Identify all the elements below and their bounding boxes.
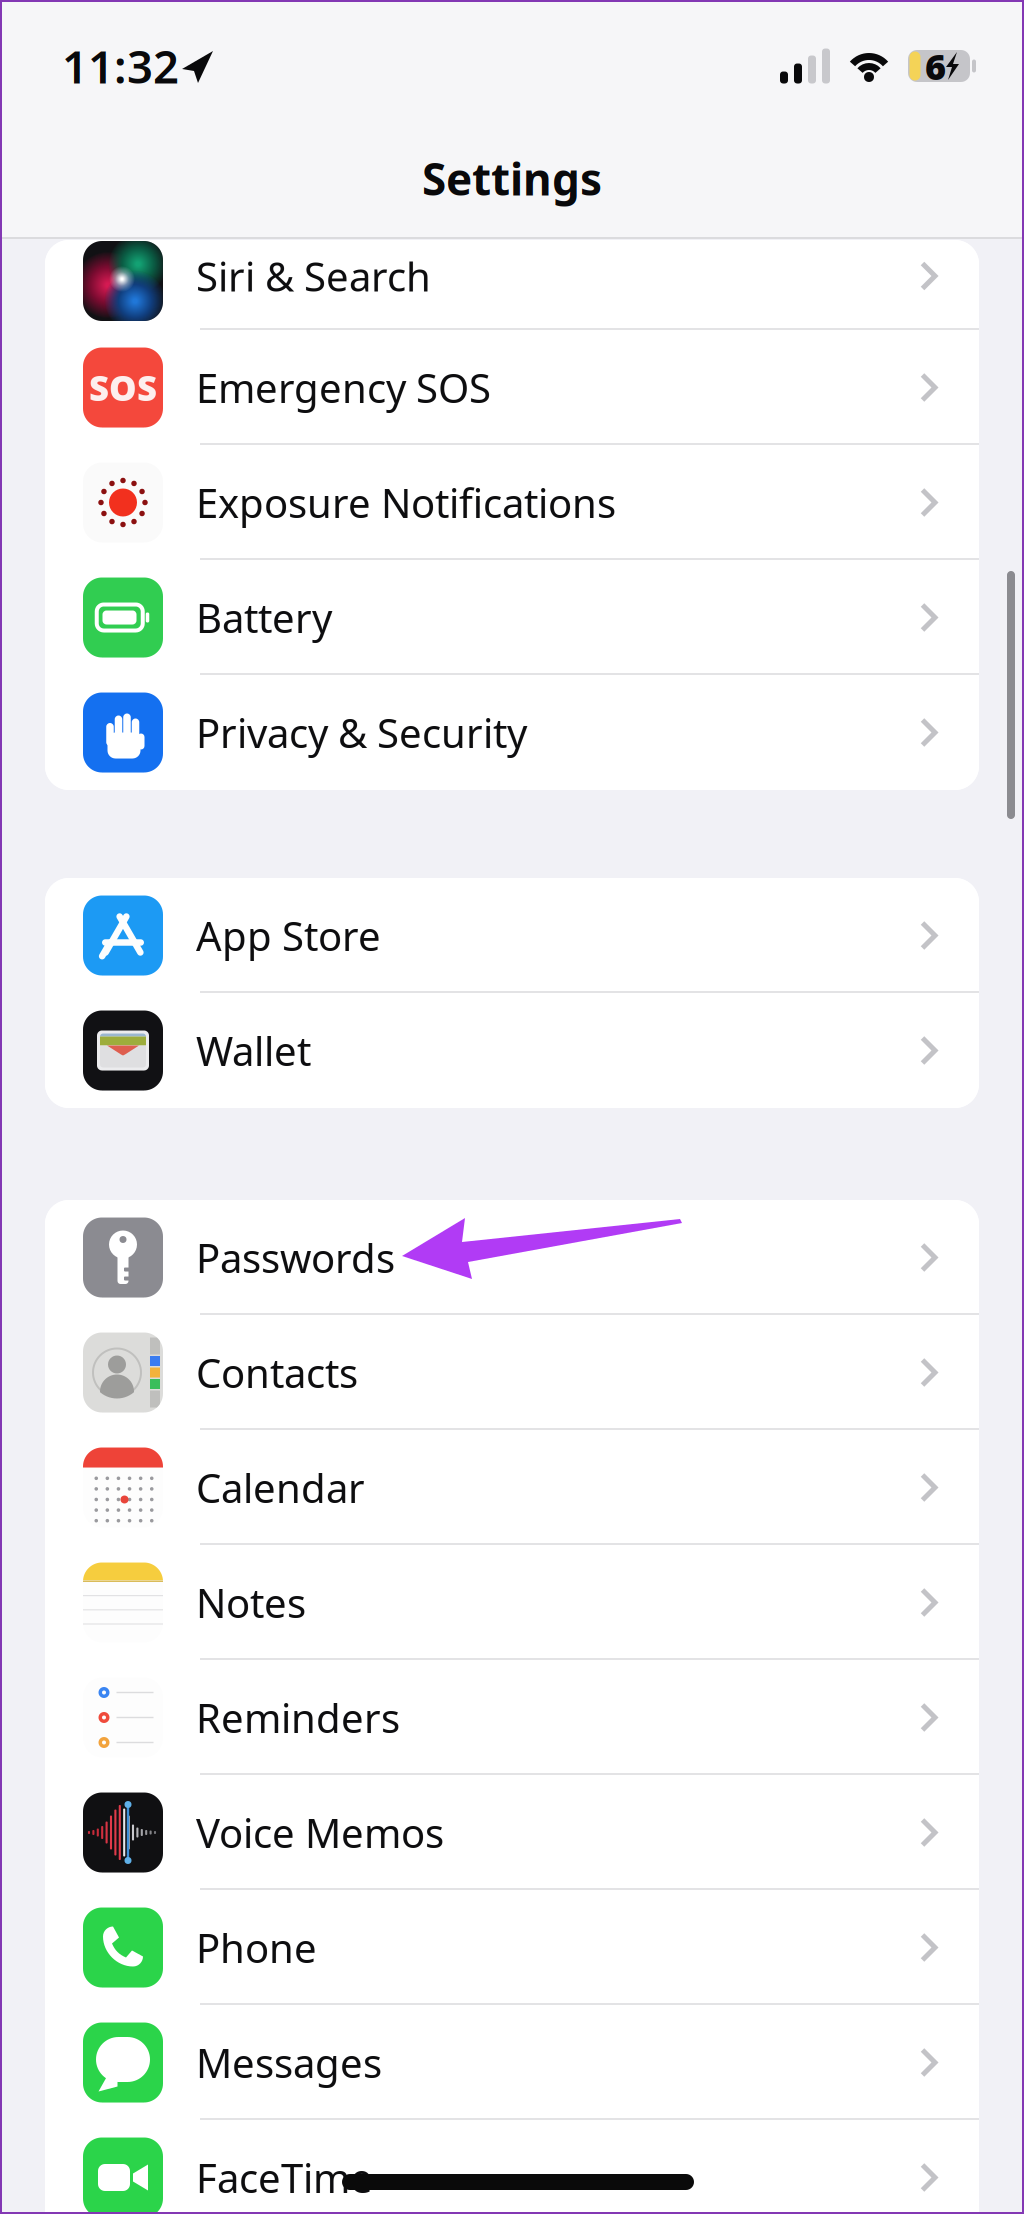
button[interactable]: Calendar <box>45 1430 979 1545</box>
button[interactable]: FaceTime <box>45 2120 979 2214</box>
button[interactable]: App Store <box>45 878 979 993</box>
staticText: 11:32 <box>62 36 179 96</box>
staticText: Settings <box>422 149 602 208</box>
button[interactable]: SOS <box>45 330 979 445</box>
button[interactable]: Siri & Search <box>45 240 979 330</box>
button[interactable]: Battery <box>45 560 979 675</box>
staticText: Voice Memos <box>196 1806 444 1859</box>
staticText: SOS <box>89 364 157 410</box>
button[interactable]: Privacy & Security <box>45 675 979 790</box>
button[interactable]: Notes <box>45 1545 979 1660</box>
staticText: Emergency SOS <box>196 361 491 414</box>
staticText: Privacy & Security <box>196 706 527 759</box>
staticText: Notes <box>196 1576 306 1629</box>
staticText: Messages <box>196 2036 382 2089</box>
button[interactable]: Contacts <box>45 1315 979 1430</box>
button[interactable]: Phone <box>45 1890 979 2005</box>
staticText: Exposure Notifications <box>196 476 616 529</box>
button[interactable]: Exposure Notifications <box>45 445 979 560</box>
button[interactable]: Voice Memos <box>45 1775 979 1890</box>
staticText: Phone <box>196 1921 317 1974</box>
staticText: Siri & Search <box>196 249 431 302</box>
button[interactable]: Messages <box>45 2005 979 2120</box>
button[interactable]: Passwords <box>45 1200 979 1315</box>
button[interactable]: Reminders <box>45 1660 979 1775</box>
button[interactable]: Wallet <box>45 993 979 1108</box>
staticText: 6 <box>925 42 946 90</box>
staticText: Reminders <box>196 1691 400 1744</box>
staticText: FaceTime <box>196 2151 373 2204</box>
staticText: Contacts <box>196 1346 358 1399</box>
staticText: Passwords <box>196 1231 395 1284</box>
staticText: App Store <box>196 909 381 962</box>
staticText: Calendar <box>196 1461 365 1514</box>
staticText: Battery <box>196 591 332 644</box>
staticText: Wallet <box>196 1024 311 1077</box>
